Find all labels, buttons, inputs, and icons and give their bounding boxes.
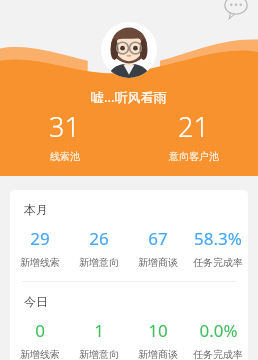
staticText: 嘘...听风看雨 <box>91 88 167 106</box>
staticText: 新增线索 <box>20 348 60 360</box>
staticText: 新增线索 <box>20 256 60 269</box>
button[interactable]: 0.0% <box>188 319 248 360</box>
staticText: 26 <box>89 227 109 250</box>
button[interactable]: Profile avatar <box>101 22 157 78</box>
staticText: 21 <box>178 108 209 145</box>
button[interactable]: 26 <box>69 227 128 269</box>
staticText: 29 <box>30 227 50 250</box>
staticText: 31 <box>49 108 80 145</box>
staticText: 新增商谈 <box>138 348 178 360</box>
staticText: 意向客户池 <box>169 150 219 163</box>
staticText: 10 <box>148 319 168 342</box>
button[interactable]: 29 <box>10 227 69 269</box>
staticText: 58.3% <box>194 227 242 250</box>
button[interactable]: 31 <box>0 108 129 163</box>
button[interactable]: 0 <box>10 319 69 360</box>
staticText: 线索池 <box>50 150 80 163</box>
staticText: 今日 <box>24 294 48 309</box>
button[interactable]: 58.3% <box>188 227 248 269</box>
staticText: 新增意向 <box>79 256 119 269</box>
button[interactable]: 10 <box>128 319 188 360</box>
staticText: 新增意向 <box>79 348 119 360</box>
staticText: 0.0% <box>199 319 238 342</box>
staticText: 1 <box>94 319 104 342</box>
button[interactable]: Messages <box>222 0 250 22</box>
staticText: 任务完成率 <box>193 256 243 269</box>
button[interactable]: 21 <box>129 108 258 163</box>
button[interactable]: 67 <box>128 227 188 269</box>
staticText: 0 <box>35 319 45 342</box>
staticText: 本月 <box>24 202 48 217</box>
staticText: 67 <box>148 227 168 250</box>
button[interactable]: 1 <box>69 319 128 360</box>
staticText: 新增商谈 <box>138 256 178 269</box>
staticText: 任务完成率 <box>193 348 243 360</box>
